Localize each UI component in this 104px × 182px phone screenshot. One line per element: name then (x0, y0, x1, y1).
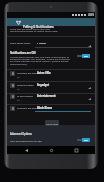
staticText: or... (17, 76, 21, 79)
staticText: or... (17, 88, 21, 91)
staticText: an article contains the word 'soccer'" (… (10, 59, 69, 62)
staticText: If you poll too often, some sites may (10, 27, 50, 30)
button[interactable]: Fetch feeds every (7, 37, 95, 48)
staticText: Fetch feeds every (10, 41, 31, 44)
staticText: In the section: (17, 94, 34, 97)
staticText: Notifications are ON (10, 51, 36, 54)
staticText: From the feed: (17, 83, 34, 86)
staticText: Entertainment (37, 94, 56, 97)
staticText: Advanced Options (10, 132, 32, 135)
staticText: or... (17, 99, 21, 102)
other: App logo (16, 20, 21, 25)
button[interactable]: Contains the word: (7, 70, 95, 82)
staticText: Add a filter (46, 122, 59, 125)
button[interactable]: Home (45, 146, 57, 154)
staticText: particular interest. For example, "Notif… (10, 57, 71, 60)
staticText: 4:59 (88, 13, 94, 17)
staticText: Aston Villa (37, 71, 51, 74)
staticText: Contains the word: (17, 71, 39, 74)
staticText: Only poll feeds when on wifi (10, 139, 42, 142)
button[interactable]: Add a filter (45, 120, 59, 126)
staticText: Engadget (37, 83, 50, 86)
staticText: ON (84, 139, 88, 142)
staticText: Choose which articles that you want to b… (10, 55, 69, 58)
staticText: block/throttle polling to reduce server … (10, 29, 58, 32)
staticText: ON (84, 55, 88, 58)
button[interactable]: Notifications are ON (7, 49, 95, 59)
staticText: matching only). (10, 62, 28, 65)
button[interactable]: Recent apps (70, 146, 82, 154)
staticText: Contains the word: (17, 106, 39, 109)
staticText: 1 hours (37, 41, 46, 44)
button[interactable]: Contains the word: (7, 105, 95, 116)
button[interactable]: Only poll feeds when on wifi (7, 137, 95, 146)
staticText: Polling & Notifications (23, 25, 54, 29)
button[interactable]: From the feed: (7, 82, 95, 94)
button[interactable]: In the section: (7, 93, 95, 105)
button[interactable]: Back (20, 146, 32, 154)
staticText: Black Blows (37, 106, 52, 109)
button[interactable]: App logo (7, 18, 95, 26)
